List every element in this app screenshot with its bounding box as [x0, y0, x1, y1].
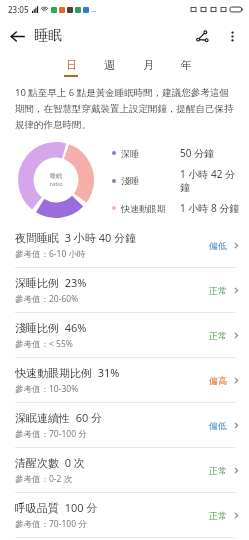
staticText: 參考值：70-100 分 — [15, 428, 87, 440]
staticText: 月 — [143, 58, 154, 72]
button[interactable]: 週 — [96, 54, 122, 80]
button[interactable]: 日 — [58, 54, 84, 80]
button[interactable]: 年 — [173, 54, 199, 80]
button[interactable]: 月 — [135, 54, 161, 80]
staticText: 偏低 — [209, 420, 227, 431]
staticText: 23:05 — [8, 4, 29, 15]
staticText: 快速動眼期 — [121, 203, 166, 214]
staticText: 清醒次數 0 次 — [15, 455, 85, 470]
staticText: 參考值：70-100 分 — [15, 518, 87, 530]
staticText: 週 — [104, 58, 115, 72]
button[interactable]: More options — [217, 21, 247, 51]
staticText: 深睡 — [121, 148, 139, 159]
staticText: 夜間睡眠 3 小時 40 分鐘 — [15, 230, 137, 245]
button[interactable]: 淺睡比例 46% — [0, 313, 249, 357]
staticText: 睡眠 — [34, 27, 62, 45]
staticText: 偏高 — [209, 375, 227, 386]
staticText: 參考值：6-10 小時 — [15, 248, 86, 260]
staticText: 正常 — [209, 330, 227, 341]
button[interactable]: 夜間睡眠 3 小時 40 分鐘 — [0, 223, 249, 267]
staticText: 淺睡 — [121, 175, 139, 186]
staticText: 參考值：0-2 次 — [15, 473, 73, 485]
staticText: 正常 — [209, 510, 227, 521]
staticText: 參考值：20-60% — [15, 293, 79, 305]
staticText: … — [91, 5, 97, 15]
staticText: 年 — [181, 58, 192, 72]
button[interactable]: 呼吸品質 100 分 — [0, 493, 249, 537]
staticText: 正常 — [209, 465, 227, 476]
staticText: 呼吸品質 100 分 — [15, 500, 98, 515]
staticText: 睡眠 — [50, 172, 62, 180]
button[interactable]: 快速動眼期比例 31% — [0, 358, 249, 402]
staticText: 10 點至早上 6 點是黃金睡眠時間，建議您參考這個期間，在智慧型穿戴裝置上設定… — [15, 86, 235, 131]
button[interactable]: 深睡比例 23% — [0, 268, 249, 312]
staticText: 淺睡比例 46% — [15, 320, 87, 335]
staticText: 偏低 — [209, 240, 227, 251]
staticText: 日 — [66, 58, 77, 72]
staticText: 快速動眼期比例 31% — [15, 365, 120, 380]
button[interactable]: Back — [0, 19, 34, 53]
button[interactable]: 清醒次數 0 次 — [0, 448, 249, 492]
staticText: 50 分鐘 — [180, 146, 242, 160]
button[interactable]: 深眠連續性 60 分 — [0, 403, 249, 447]
staticText: 參考值：10-30% — [15, 383, 79, 395]
staticText: 深眠連續性 60 分 — [15, 410, 103, 425]
staticText: 1 小時 42 分鐘 — [180, 167, 242, 194]
staticText: ratio — [49, 180, 63, 188]
staticText: 正常 — [209, 285, 227, 296]
button[interactable]: Share — [187, 21, 217, 51]
staticText: 參考值：< 55% — [15, 338, 73, 350]
staticText: 深睡比例 23% — [15, 275, 87, 290]
staticText: 1 小時 8 分鐘 — [180, 201, 242, 215]
